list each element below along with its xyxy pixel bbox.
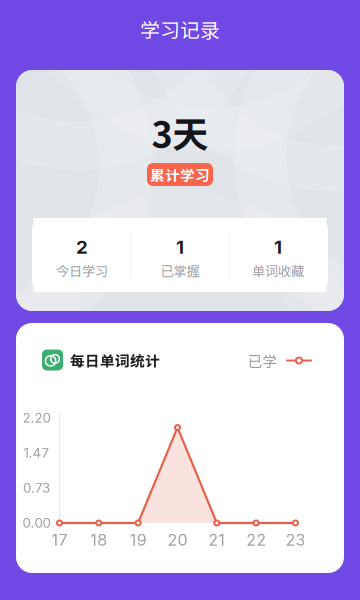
staticText: 单词收藏 xyxy=(252,261,304,280)
staticText: 学习记录 xyxy=(140,14,220,43)
staticText: 0.73 xyxy=(23,480,50,496)
staticText: 21 xyxy=(208,530,225,550)
staticText: 已学 xyxy=(247,350,277,371)
staticText: 累计学习 xyxy=(150,164,210,185)
staticText: 19 xyxy=(130,530,147,550)
staticText: 2.20 xyxy=(22,410,50,426)
button[interactable]: 每日单词统计 xyxy=(42,349,222,371)
staticText: 20 xyxy=(167,530,187,550)
button[interactable]: 1 xyxy=(229,218,326,292)
staticText: 22 xyxy=(246,530,266,550)
staticText: 0.00 xyxy=(22,515,50,531)
button[interactable]: 2 xyxy=(33,218,130,292)
staticText: 1.47 xyxy=(23,445,49,461)
staticText: 今日学习 xyxy=(56,261,108,280)
staticText: 23 xyxy=(285,530,305,550)
staticText: 1 xyxy=(176,236,184,258)
button[interactable]: 1 xyxy=(131,218,228,292)
staticText: 每日单词统计 xyxy=(70,349,160,371)
staticText: 3天 xyxy=(151,106,208,158)
staticText: 2 xyxy=(76,236,88,258)
staticText: 1 xyxy=(274,236,282,258)
staticText: 18 xyxy=(90,530,107,550)
staticText: 已掌握 xyxy=(160,261,199,280)
staticText: 17 xyxy=(51,530,67,550)
